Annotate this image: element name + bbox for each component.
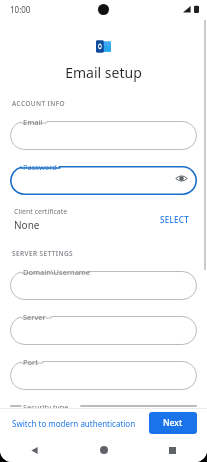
staticText: Password — [23, 162, 57, 172]
button[interactable]: Show password — [173, 170, 189, 186]
button[interactable]: Domain\Username — [10, 264, 197, 302]
staticText: Switch to modern authentication — [12, 418, 136, 429]
staticText: 10:00 — [10, 4, 31, 15]
staticText: Email — [23, 117, 43, 127]
staticText: SERVER SETTINGS — [12, 249, 73, 258]
button[interactable]: Switch to modern authentication — [10, 413, 138, 434]
staticText: None — [14, 218, 40, 232]
staticText: Server — [23, 312, 46, 322]
staticText: Port — [23, 357, 38, 367]
button[interactable]: Security type — [10, 399, 197, 408]
button[interactable]: Client certificate — [0, 204, 207, 235]
button[interactable]: Recent apps — [138, 438, 207, 462]
button[interactable]: Back — [0, 438, 69, 462]
button[interactable]: Port — [10, 354, 197, 392]
button[interactable]: SELECT — [156, 211, 193, 228]
staticText: Security type — [23, 402, 69, 411]
staticText: Next — [163, 417, 183, 429]
button[interactable]: Server — [10, 309, 197, 347]
staticText: ACCOUNT INFO — [12, 99, 66, 108]
button[interactable]: Password — [10, 159, 197, 197]
staticText: SELECT — [160, 214, 189, 225]
button[interactable]: Next — [149, 412, 197, 434]
staticText: Client certificate — [14, 207, 68, 217]
button[interactable]: Home — [69, 438, 138, 462]
staticText: Email setup — [0, 63, 207, 82]
staticText: Domain\Username — [23, 267, 91, 277]
button[interactable]: Email — [10, 114, 197, 152]
